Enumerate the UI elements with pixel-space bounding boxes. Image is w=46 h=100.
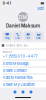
staticText: Share My Location [2,82,34,87]
staticText: mail [36,36,41,40]
staticText: Daniel Maksum [6,23,40,28]
staticText: DM [18,14,27,20]
button[interactable]: Video [23,31,33,40]
staticText: Share Contact [2,68,26,73]
button[interactable]: Shared with you [0,42,46,48]
button[interactable]: Recents [21,90,24,93]
staticText: Edit [37,6,43,11]
button[interactable]: Call [13,31,22,40]
staticText: Add to Favourites [2,75,32,80]
button[interactable]: Message [2,31,12,40]
button[interactable]: mobile [0,49,46,59]
button[interactable]: Edit [35,5,45,12]
button[interactable]: Share My Location [0,81,46,87]
button[interactable]: Share Contact [0,67,46,73]
staticText: 9:41 [2,1,11,5]
staticText: Send Message [2,61,28,66]
staticText: msg [5,36,10,40]
staticText: mobile [2,50,12,54]
staticText: call [15,36,20,40]
button[interactable]: Mail [34,31,43,40]
staticText: +1 (555) 010-4477 [2,54,37,58]
staticText: vid [26,36,30,40]
button[interactable]: Voicemail [29,90,32,93]
staticText: Shared with you [5,44,28,47]
button[interactable]: Favourites [13,90,16,93]
button[interactable]: Add to Favourites [0,74,46,80]
staticText: ▮▮▮ [40,1,43,4]
button[interactable]: Send Message [0,60,46,66]
